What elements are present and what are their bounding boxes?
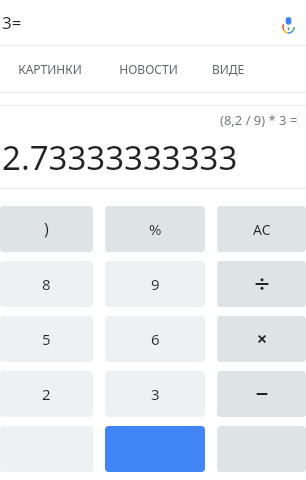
staticText: 2.73333333333 — [2, 135, 238, 180]
button[interactable]: КАРТИНКИ — [0, 46, 100, 92]
staticText: 6 — [151, 329, 160, 349]
button[interactable]: Multiply — [217, 316, 306, 362]
staticText: AC — [253, 220, 271, 239]
staticText: 8 — [42, 274, 51, 294]
staticText: 2 — [42, 384, 51, 404]
button[interactable]: 3= — [0, 0, 306, 45]
staticText: (8,2 / 9) * 3 = — [220, 111, 298, 129]
button[interactable]: ВИДЕ — [196, 46, 306, 92]
button[interactable]: Equals — [105, 426, 205, 472]
staticText: % — [149, 219, 162, 239]
button[interactable]: 2 — [0, 371, 93, 417]
button[interactable]: % — [105, 206, 205, 252]
staticText: КАРТИНКИ — [18, 61, 82, 77]
button[interactable]: 5 — [0, 316, 93, 362]
button[interactable]: ) — [0, 206, 93, 252]
button[interactable]: 3 — [105, 371, 205, 417]
staticText: НОВОСТИ — [119, 61, 178, 77]
button[interactable]: НОВОСТИ — [100, 46, 196, 92]
staticText: 5 — [42, 329, 51, 349]
staticText: ) — [44, 218, 49, 240]
button[interactable]: 9 — [105, 261, 205, 307]
staticText: 3= — [2, 11, 22, 34]
button[interactable]: Voice search — [276, 11, 300, 35]
staticText: ВИДЕ — [212, 61, 245, 77]
button[interactable]: 8 — [0, 261, 93, 307]
other: Voice search — [279, 14, 298, 33]
button[interactable]: 6 — [105, 316, 205, 362]
button[interactable]: Divide — [217, 261, 306, 307]
staticText: 9 — [151, 274, 160, 294]
button[interactable]: AC — [217, 206, 306, 252]
button[interactable]: Subtract — [217, 371, 306, 417]
staticText: 3 — [151, 384, 160, 404]
